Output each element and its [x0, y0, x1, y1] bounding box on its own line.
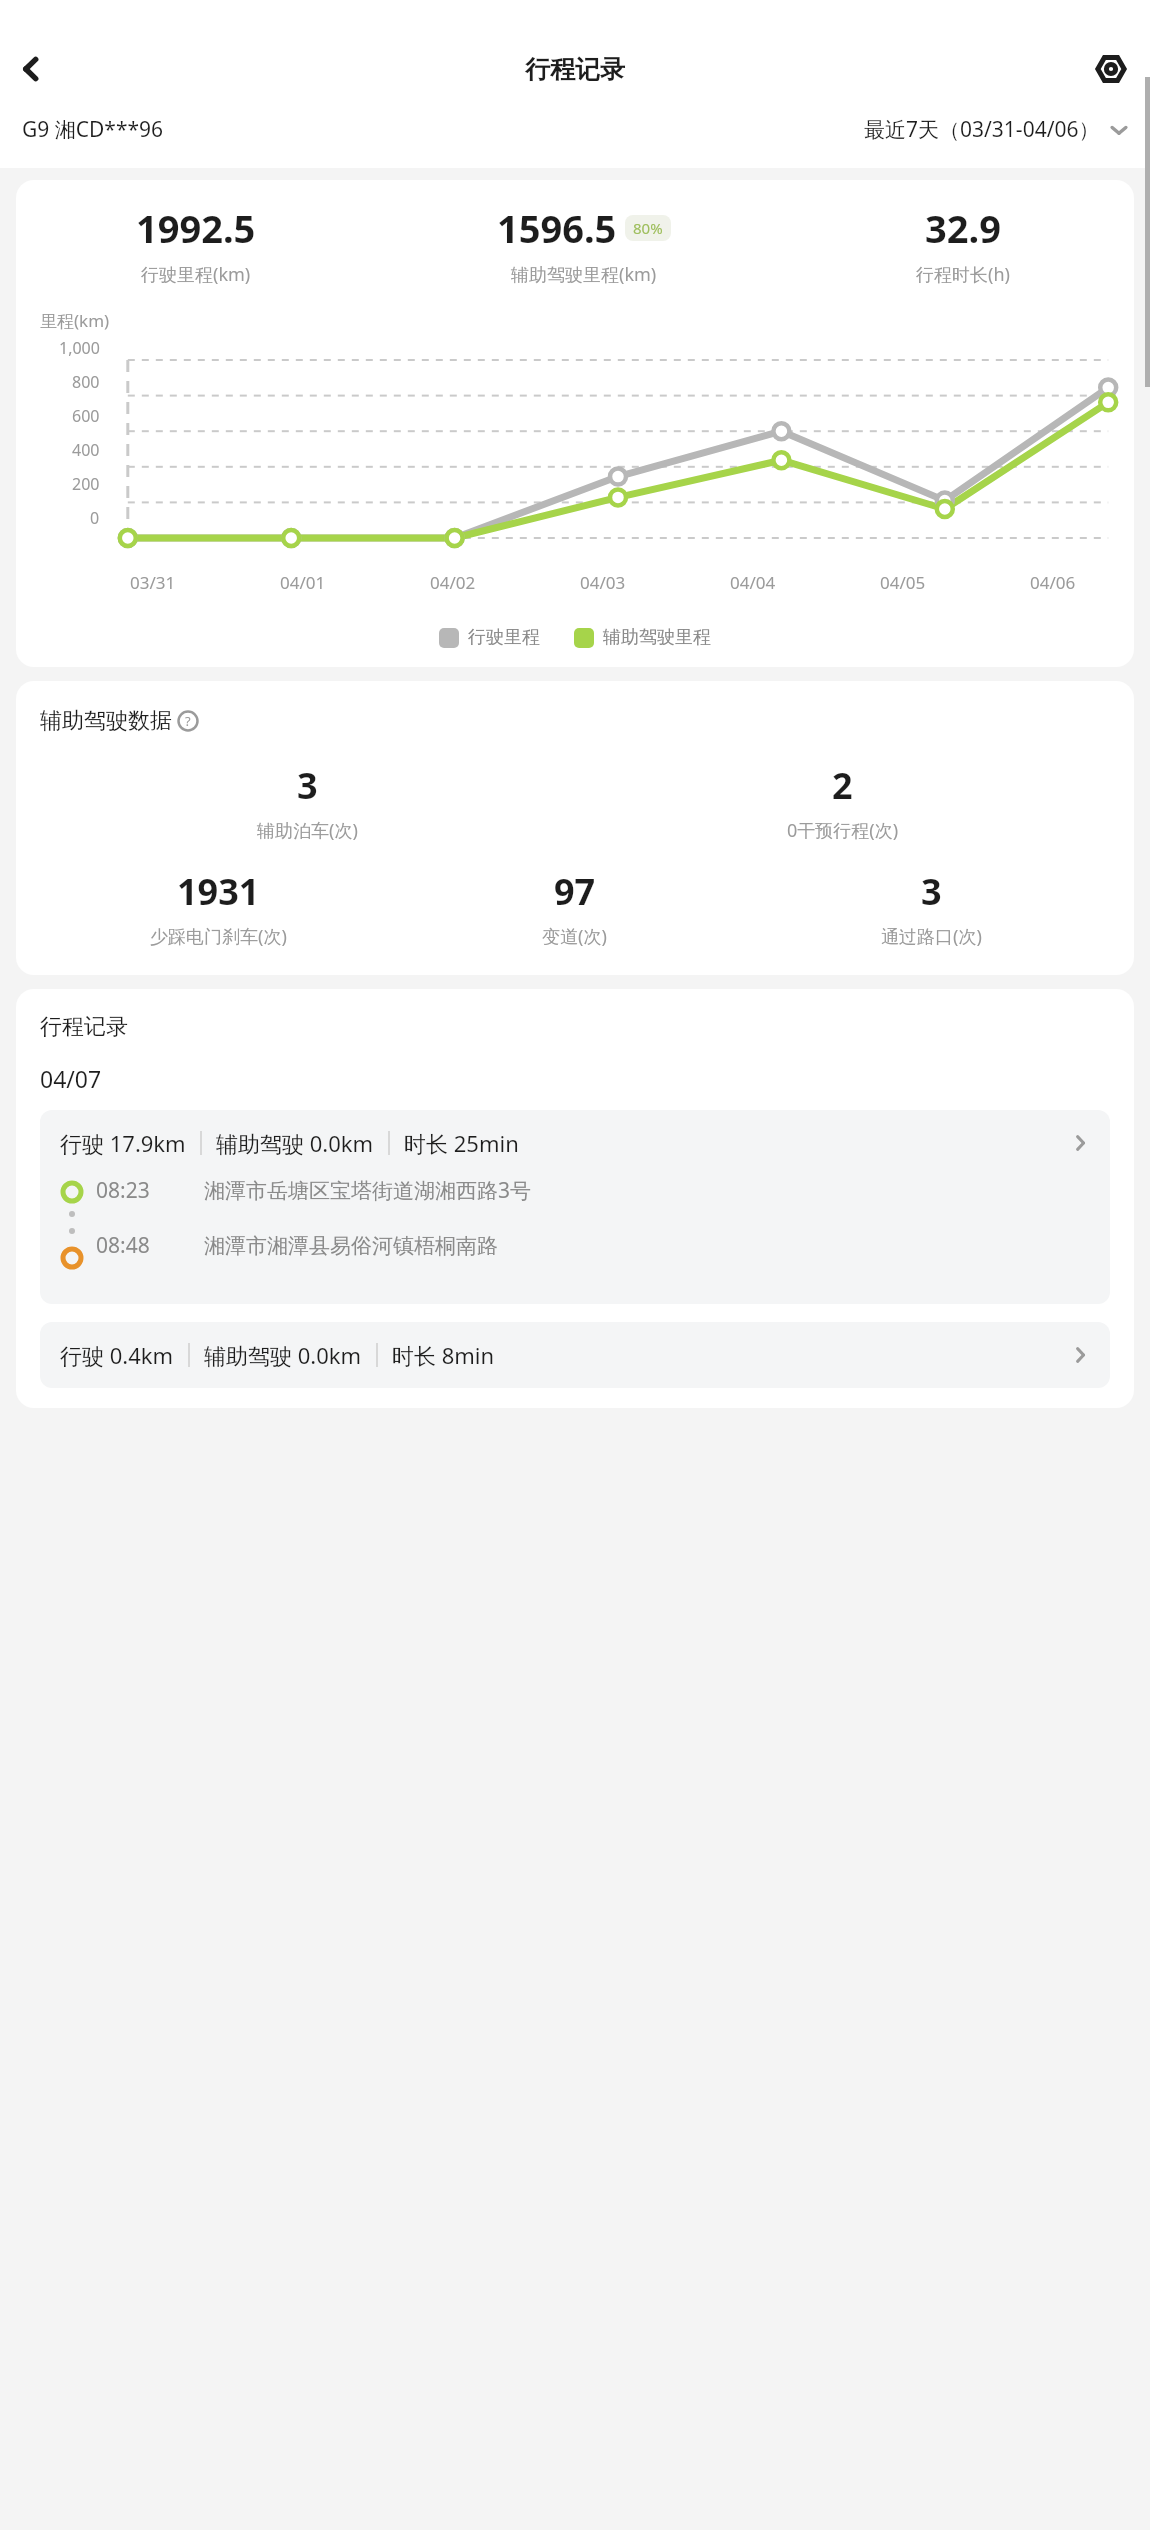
staticText: 行驶里程	[468, 626, 540, 649]
staticText: 1596.5	[497, 202, 617, 254]
button[interactable]: 最近7天（03/31-04/06）	[864, 109, 1128, 150]
staticText: 04/03	[580, 571, 626, 594]
staticText: 1992.5	[136, 202, 256, 254]
staticText: 最近7天（03/31-04/06）	[864, 115, 1100, 144]
button[interactable]: Settings	[1084, 42, 1138, 96]
staticText: 辅助泊车(次)	[257, 818, 358, 843]
staticText: 湘潭市湘潭县易俗河镇梧桐南路	[204, 1233, 498, 1259]
button[interactable]: 行驶 0.4km	[40, 1322, 1110, 1388]
staticText: 3	[297, 761, 318, 810]
staticText: 97	[554, 867, 596, 916]
staticText: 03/31	[130, 571, 176, 594]
staticText: 04/04	[730, 571, 776, 594]
staticText: 辅助驾驶 0.0km	[216, 1128, 374, 1158]
staticText: 32.9	[925, 202, 1001, 254]
staticText: 辅助驾驶里程	[603, 626, 711, 649]
staticText: 04/02	[430, 571, 476, 594]
staticText: 行程时长(h)	[916, 262, 1010, 287]
staticText: 1,000	[59, 337, 100, 359]
button[interactable]: 行驶 17.9km	[40, 1110, 1110, 1304]
staticText: 少踩电门刹车(次)	[150, 924, 287, 949]
staticText: 通过路口(次)	[881, 924, 982, 949]
staticText: 时长 25min	[404, 1128, 519, 1158]
staticText: 辅助驾驶 0.0km	[204, 1340, 362, 1370]
staticText: 0干预行程(次)	[787, 818, 899, 843]
staticText: 湘潭市岳塘区宝塔街道湖湘西路3号	[204, 1176, 532, 1205]
staticText: 时长 8min	[392, 1340, 495, 1370]
staticText: 1931	[177, 867, 260, 916]
staticText: 行驶 17.9km	[60, 1128, 186, 1158]
staticText: ?	[185, 712, 191, 730]
staticText: G9 湘CD***96	[22, 115, 164, 144]
staticText: 0	[90, 507, 100, 529]
button[interactable]: Info	[177, 710, 199, 732]
staticText: 辅助驾驶里程(km)	[511, 262, 657, 287]
staticText: 变道(次)	[542, 924, 607, 949]
staticText: 行程记录	[525, 54, 625, 85]
staticText: 800	[72, 371, 100, 393]
staticText: 04/06	[1030, 571, 1076, 594]
staticText: 400	[72, 439, 100, 461]
staticText: 04/05	[880, 571, 926, 594]
staticText: 08:48	[96, 1231, 188, 1260]
staticText: 2	[832, 761, 853, 810]
staticText: 3	[921, 867, 942, 916]
staticText: 里程(km)	[40, 309, 110, 332]
button[interactable]: G9 湘CD***96	[22, 109, 164, 150]
staticText: 08:23	[96, 1176, 188, 1205]
staticText: 行驶 0.4km	[60, 1340, 174, 1370]
staticText: 04/01	[280, 571, 326, 594]
button[interactable]: Back	[4, 42, 58, 96]
staticText: 600	[72, 405, 100, 427]
staticText: 200	[72, 473, 100, 495]
staticText: 行驶里程(km)	[141, 262, 251, 287]
staticText: 辅助驾驶数据	[40, 707, 172, 735]
staticText: 80%	[633, 218, 663, 238]
staticText: 行程记录	[40, 1013, 128, 1041]
staticText: 04/07	[40, 1063, 102, 1094]
